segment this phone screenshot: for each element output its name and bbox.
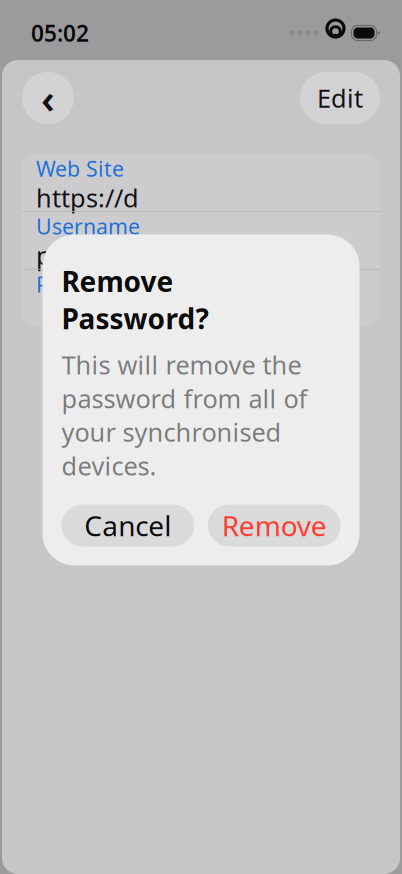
staticText: Password xyxy=(36,270,132,298)
staticText: https://d xyxy=(36,181,139,214)
staticText: Edit xyxy=(317,81,363,115)
button[interactable]: Edit xyxy=(300,72,380,124)
staticText: Web Site xyxy=(36,154,124,183)
staticText: Remove Password? xyxy=(61,262,208,337)
button[interactable]: Username xyxy=(22,212,380,269)
button[interactable]: Back xyxy=(22,72,74,124)
staticText: Remove xyxy=(222,507,327,544)
staticText: Cancel xyxy=(84,507,171,544)
staticText: 05:02 xyxy=(31,18,89,48)
button[interactable]: Remove xyxy=(208,504,340,546)
staticText: This will remove the password from all o… xyxy=(61,348,307,482)
button[interactable]: Password xyxy=(22,270,380,327)
button[interactable]: Cancel xyxy=(61,504,194,546)
staticText: Username xyxy=(36,212,140,240)
staticText: ‹ xyxy=(41,71,55,124)
button[interactable]: Web Site xyxy=(22,154,380,211)
staticText: p xyxy=(36,239,52,272)
